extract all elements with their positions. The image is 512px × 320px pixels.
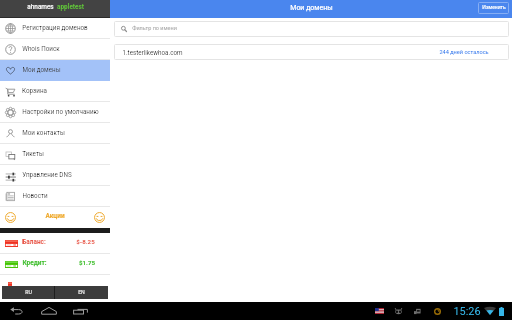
staticText: Корзина [22, 87, 47, 94]
button[interactable]: Back [4, 302, 28, 320]
staticText: $1.75 [79, 259, 95, 266]
button[interactable]: Баланс: [0, 233, 110, 254]
button[interactable]: Мои домены [0, 60, 110, 81]
button[interactable]: Акции [0, 207, 110, 228]
staticText: EN [78, 289, 85, 295]
staticText: Тикеты [22, 150, 44, 157]
staticText: ahnames [27, 3, 54, 11]
button[interactable]: Recent apps [68, 302, 92, 320]
staticText: Whois Поиск [22, 45, 60, 52]
button[interactable]: EN [55, 286, 108, 299]
button[interactable]: Фильтр по имени [114, 21, 509, 37]
button[interactable]: RU [2, 286, 54, 299]
staticText: 15:26 [453, 305, 481, 318]
button[interactable]: 1.testerlikewhoa.com [114, 44, 509, 60]
staticText: Кредит: [22, 259, 47, 267]
staticText: $-8.25 [76, 238, 95, 245]
staticText: Мои домены [290, 4, 333, 12]
button[interactable]: Home [37, 302, 61, 320]
button[interactable]: Тикеты [0, 144, 110, 165]
staticText: Управление DNS [22, 171, 72, 178]
staticText: Новости [22, 192, 48, 199]
staticText: Баланс: [22, 238, 46, 246]
staticText: 244 дней осталось [439, 49, 489, 56]
button[interactable]: Кредит: [0, 254, 110, 275]
staticText: Регистрация доменов [22, 24, 88, 31]
staticText: 1.testerlikewhoa.com [122, 49, 183, 56]
button[interactable]: Whois Поиск [0, 39, 110, 60]
button[interactable]: Новости [0, 186, 110, 207]
button[interactable]: Регистрация доменов [0, 18, 110, 39]
staticText: Мои домены [22, 66, 61, 73]
button[interactable]: Настройки по умолчанию [0, 102, 110, 123]
staticText: RU [25, 289, 32, 295]
staticText: appletest [57, 3, 84, 11]
staticText: Акции [45, 212, 65, 220]
staticText: Изменить [482, 4, 506, 10]
staticText: Настройки по умолчанию [22, 108, 99, 115]
button[interactable]: Корзина [0, 81, 110, 102]
staticText: Фильтр по имени [132, 25, 177, 31]
button[interactable]: Управление DNS [0, 165, 110, 186]
staticText: Мои контакты [22, 129, 65, 136]
button[interactable]: Изменить [478, 2, 509, 14]
button[interactable]: Мои контакты [0, 123, 110, 144]
